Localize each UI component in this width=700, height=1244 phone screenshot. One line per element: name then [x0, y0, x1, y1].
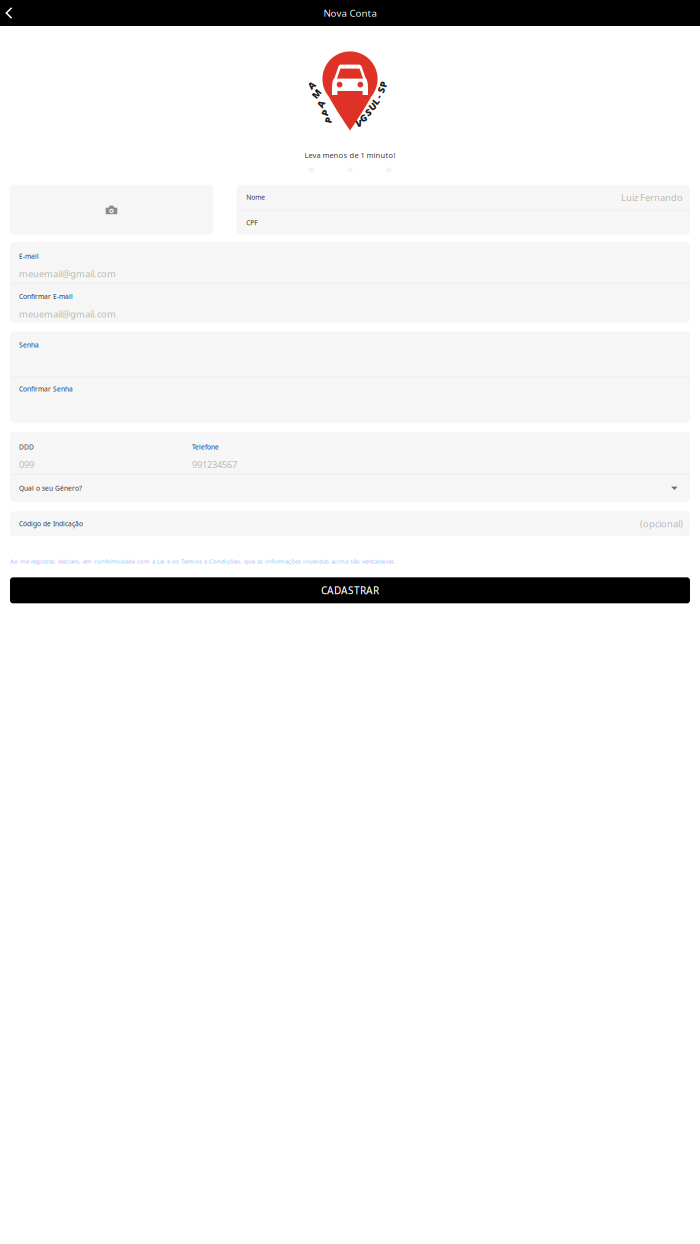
staticText: meuemail@gmail.com	[19, 307, 116, 320]
staticText: A	[317, 98, 324, 110]
staticText: (opcional)	[640, 517, 683, 530]
staticText: S	[366, 106, 371, 119]
staticText: V	[355, 117, 361, 130]
staticText: G	[360, 111, 367, 124]
staticText: Qual o seu Gênero?	[19, 484, 82, 493]
button[interactable]: Back	[0, 0, 22, 26]
staticText: meuemail@gmail.com	[19, 267, 116, 280]
staticText: S	[378, 84, 383, 96]
button[interactable]: CADASTRAR	[10, 577, 690, 603]
staticText: P	[380, 78, 386, 91]
staticText: E-mail	[19, 252, 39, 261]
staticText: CPF	[246, 218, 257, 227]
button[interactable]: Qual o seu Gênero?	[10, 475, 690, 502]
staticText: Confirmar E-mail	[19, 292, 73, 301]
staticText: Código de Indicação	[19, 519, 83, 528]
staticText: 099	[19, 458, 34, 471]
staticText: Leva menos de 1 minuto!	[304, 150, 395, 160]
staticText: P	[322, 106, 328, 119]
staticText: Nova Conta	[323, 6, 376, 20]
staticText: L	[373, 95, 378, 108]
staticText: A	[308, 79, 315, 92]
staticText: Confirmar Senha	[19, 384, 73, 393]
button[interactable]: Adicionar foto	[10, 185, 213, 235]
staticText: Ao me registrar, declaro, em conformidad…	[10, 557, 396, 565]
staticText: CADASTRAR	[321, 583, 379, 597]
staticText: M	[312, 87, 321, 100]
staticText: Nome	[246, 193, 265, 202]
staticText: DDD	[19, 442, 34, 451]
staticText: Luiz Fernando	[621, 191, 683, 204]
staticText: P	[325, 114, 331, 126]
staticText: -	[377, 90, 380, 103]
staticText: Senha	[19, 340, 39, 349]
button[interactable]: Ao me registrar, declaro, em conformidad…	[10, 557, 396, 565]
staticText: U	[369, 100, 376, 113]
staticText: Telefone	[192, 442, 219, 451]
staticText: 991234567	[192, 458, 237, 471]
